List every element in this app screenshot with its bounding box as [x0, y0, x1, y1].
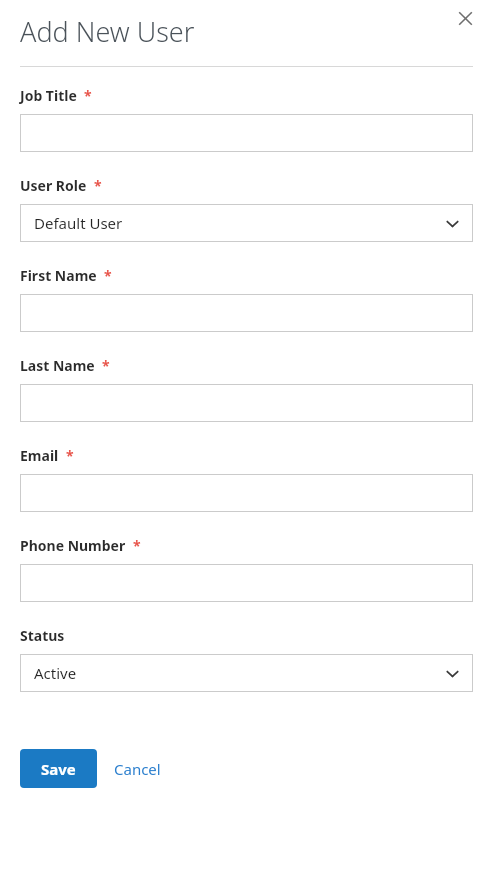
button[interactable] [20, 474, 473, 512]
staticText: Save [41, 759, 76, 779]
staticText: Phone Number [20, 536, 126, 555]
button[interactable]: Default User [20, 204, 473, 242]
staticText: Last Name [20, 356, 95, 375]
staticText: User Role [20, 176, 87, 195]
button[interactable]: Save [20, 749, 97, 788]
staticText: * [104, 266, 112, 285]
button[interactable] [20, 564, 473, 602]
staticText: * [94, 176, 102, 195]
button[interactable] [20, 294, 473, 332]
staticText: Email [20, 446, 59, 465]
staticText: Default User [34, 213, 123, 233]
staticText: Status [20, 626, 65, 645]
button[interactable] [20, 384, 473, 422]
staticText: Active [34, 663, 77, 683]
button[interactable] [20, 114, 473, 152]
button[interactable]: Close [450, 3, 480, 33]
button[interactable]: Active [20, 654, 473, 692]
staticText: First Name [20, 266, 97, 285]
button[interactable]: Cancel [97, 749, 178, 788]
staticText: Job Title [20, 86, 77, 105]
staticText: * [84, 86, 92, 105]
staticText: * [66, 446, 74, 465]
staticText: * [102, 356, 110, 375]
staticText: Cancel [114, 759, 161, 779]
staticText: * [133, 536, 141, 555]
staticText: Add New User [20, 13, 195, 50]
